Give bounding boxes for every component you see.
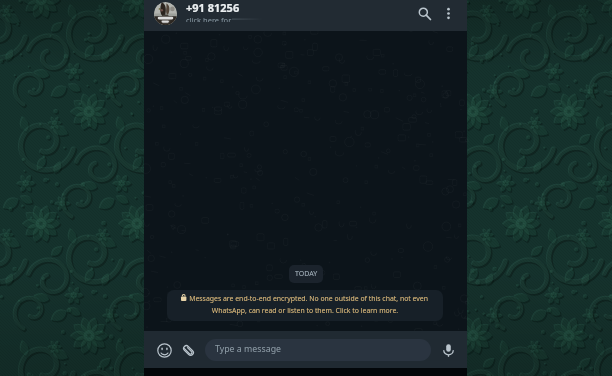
button[interactable]: Type a message bbox=[205, 339, 431, 361]
button[interactable]: Voice message bbox=[437, 339, 459, 361]
button[interactable]: Attach bbox=[177, 339, 199, 361]
staticText: Type a message bbox=[215, 343, 282, 355]
button[interactable]: TODAY bbox=[289, 265, 323, 283]
button[interactable]: Messages are end-to-end encrypted. No on… bbox=[167, 290, 443, 321]
button[interactable]: More options bbox=[438, 3, 458, 23]
staticText: TODAY bbox=[295, 269, 318, 279]
button[interactable]: Emoji bbox=[153, 339, 175, 361]
staticText: Messages are end-to-end encrypted. No on… bbox=[174, 294, 436, 315]
button[interactable]: +91 81256 bbox=[186, 0, 366, 22]
button[interactable]: Profile picture bbox=[154, 2, 177, 25]
staticText: +91 81256 bbox=[186, 0, 240, 15]
staticText: click here for bbox=[186, 15, 232, 22]
button[interactable]: Search bbox=[411, 0, 437, 26]
